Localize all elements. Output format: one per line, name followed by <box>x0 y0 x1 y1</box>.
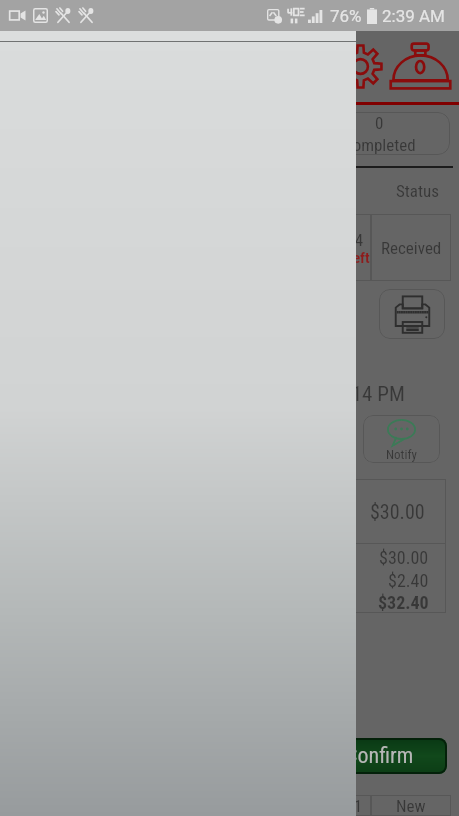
staticText: Status <box>396 181 439 201</box>
staticText: Completed <box>343 135 416 155</box>
button[interactable] <box>0 31 356 816</box>
staticText: Notify <box>386 447 417 462</box>
staticText: New <box>396 796 426 816</box>
staticText: Ordered at 2:14 PM <box>245 382 405 407</box>
staticText: $2.40 <box>388 570 429 591</box>
button[interactable]: Settings <box>338 32 383 100</box>
staticText: Confirm <box>345 743 414 769</box>
staticText: 2:14 <box>334 230 364 249</box>
staticText: Received <box>381 238 442 258</box>
button[interactable]: 0 <box>308 112 450 155</box>
staticText: $30.00 <box>370 500 425 523</box>
button[interactable]: Print receipt <box>379 289 445 339</box>
staticText: 2:39 AM <box>382 6 445 26</box>
staticText: 1 × Margherita Pizza <box>19 501 370 522</box>
staticText: 2:31 <box>333 796 363 816</box>
staticText: 0 <box>375 113 384 133</box>
staticText: $32.40 <box>378 592 429 613</box>
button[interactable]: Orders <box>390 32 451 100</box>
staticText: 76% <box>330 6 362 26</box>
staticText: 5m left <box>327 249 370 266</box>
button[interactable]: Confirm <box>312 738 447 774</box>
staticText: $30.00 <box>379 547 429 568</box>
button[interactable]: Notify <box>363 415 440 463</box>
